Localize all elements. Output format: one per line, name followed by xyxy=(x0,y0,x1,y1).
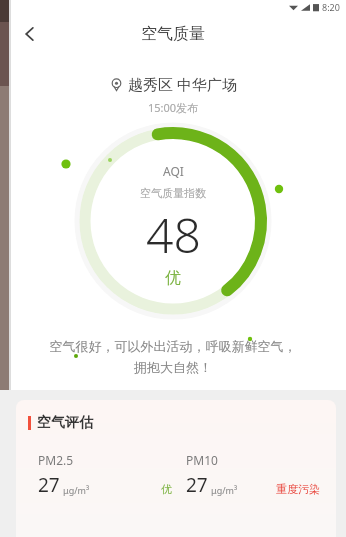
staticText: 优 xyxy=(161,482,172,496)
button[interactable]: Back xyxy=(12,16,48,52)
staticText: 27 xyxy=(186,472,208,498)
staticText: PM2.5 xyxy=(38,452,74,468)
staticText: 重度污染 xyxy=(276,482,320,496)
staticText: AQI xyxy=(163,163,184,179)
staticText: 15:00发布 xyxy=(0,100,346,115)
staticText: 8:20 xyxy=(322,1,340,13)
staticText: 空气质量指数 xyxy=(140,186,206,200)
staticText: 空气评估 xyxy=(37,414,93,432)
staticText: PM10 xyxy=(186,452,218,468)
staticText: 越秀区 中华广场 xyxy=(128,74,237,94)
staticText: μg/m³ xyxy=(211,484,238,496)
staticText: 空气很好，可以外出活动，呼吸新鲜空气， 拥抱大自然！ xyxy=(20,338,326,376)
staticText: 27 xyxy=(38,472,60,498)
staticText: μg/m³ xyxy=(63,484,90,496)
staticText: 48 xyxy=(146,202,201,267)
staticText: 优 xyxy=(165,268,181,288)
staticText: 空气质量 xyxy=(141,24,205,44)
button[interactable]: 空气评估 xyxy=(16,400,336,537)
